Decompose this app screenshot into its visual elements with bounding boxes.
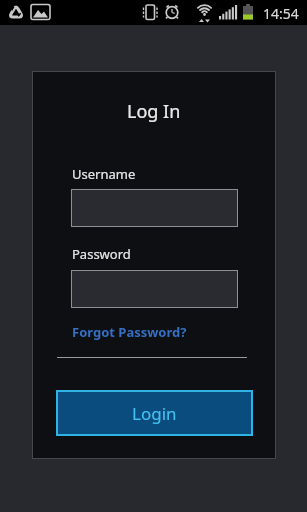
button[interactable]	[71, 270, 238, 308]
button[interactable]: Login	[56, 390, 253, 436]
staticText: Username	[72, 165, 136, 183]
button[interactable]	[71, 189, 238, 227]
staticText: Forgot Password?	[72, 323, 187, 341]
staticText: Login	[132, 402, 177, 425]
staticText: Log In	[127, 99, 181, 124]
staticText: Password	[72, 245, 131, 263]
button[interactable]: Forgot Password?	[72, 323, 187, 341]
staticText: 14:54	[263, 4, 299, 23]
